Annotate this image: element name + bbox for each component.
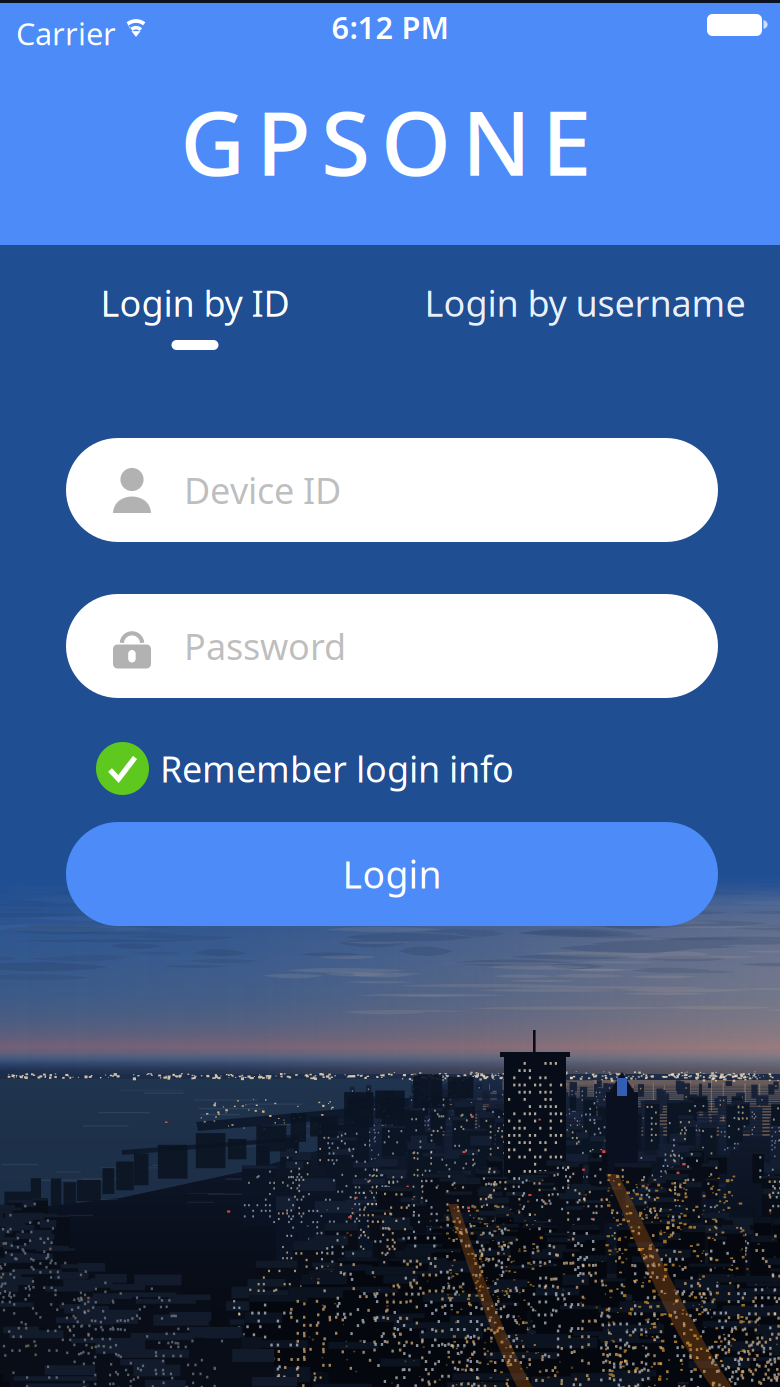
staticText: Password xyxy=(184,622,346,670)
button[interactable]: Device ID xyxy=(66,438,718,542)
staticText: Login by ID xyxy=(100,279,289,327)
staticText: P xyxy=(256,82,310,200)
button[interactable]: Login xyxy=(66,822,718,926)
staticText: Login by username xyxy=(424,279,745,327)
button[interactable]: Remember login info xyxy=(96,741,566,796)
staticText: E xyxy=(542,82,592,200)
button[interactable]: Password xyxy=(66,594,718,698)
staticText: N xyxy=(462,82,531,200)
staticText: Login xyxy=(342,849,441,899)
button[interactable]: Login by username xyxy=(390,259,780,349)
staticText: G xyxy=(180,82,245,200)
staticText: 6:12 PM xyxy=(331,7,448,47)
staticText: S xyxy=(321,82,370,200)
button[interactable]: Login by ID xyxy=(0,259,390,349)
staticText: O xyxy=(381,82,451,200)
staticText: Remember login info xyxy=(160,745,514,792)
staticText: Device ID xyxy=(184,466,341,514)
staticText: Carrier xyxy=(16,13,116,54)
